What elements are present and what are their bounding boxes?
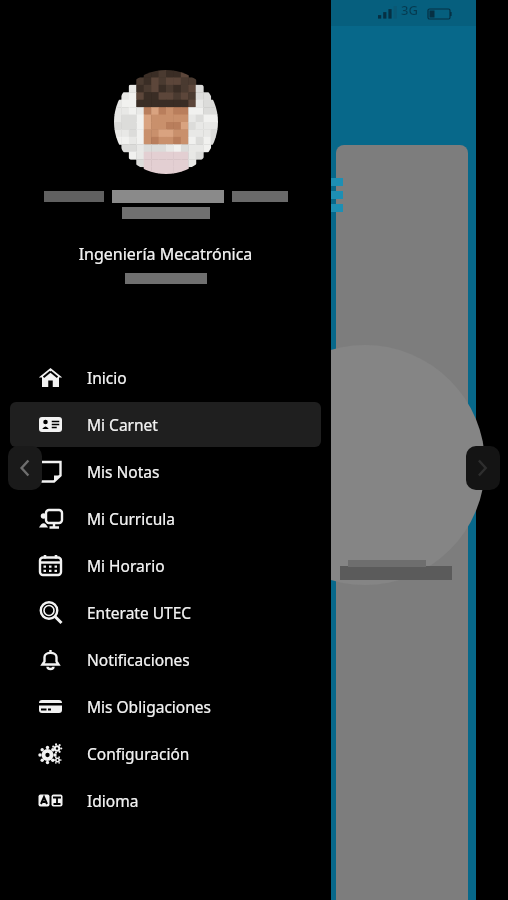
button[interactable]: Mis Obligaciones <box>10 684 321 729</box>
button[interactable]: Mis Notas <box>10 449 321 494</box>
staticText: Notificaciones <box>87 649 190 670</box>
staticText: Mi Horario <box>87 555 165 576</box>
staticText: Idioma <box>87 790 139 811</box>
button[interactable]: Inicio <box>10 355 321 400</box>
button[interactable]: Idioma <box>10 778 321 823</box>
staticText: Mi Curricula <box>87 508 175 529</box>
staticText: Mi Carnet <box>87 414 158 435</box>
button[interactable]: Mi Carnet <box>10 402 321 447</box>
button[interactable]: Enterate UTEC <box>10 590 321 635</box>
button[interactable]: Foto de perfil <box>114 70 218 174</box>
button[interactable]: Notificaciones <box>10 637 321 682</box>
staticText: Mis Notas <box>87 461 160 482</box>
button[interactable]: Mi Horario <box>10 543 321 588</box>
staticText: Mis Obligaciones <box>87 696 211 717</box>
staticText: 3G <box>401 1 418 19</box>
staticText: Inicio <box>87 367 127 388</box>
staticText: Configuración <box>87 743 190 764</box>
staticText: Enterate UTEC <box>87 602 192 623</box>
staticText: Ingeniería Mecatrónica <box>0 243 331 265</box>
button[interactable]: Atrás <box>8 446 42 490</box>
button[interactable]: Configuración <box>10 731 321 776</box>
button[interactable]: Adelante <box>466 446 500 490</box>
button[interactable]: Mi Curricula <box>10 496 321 541</box>
